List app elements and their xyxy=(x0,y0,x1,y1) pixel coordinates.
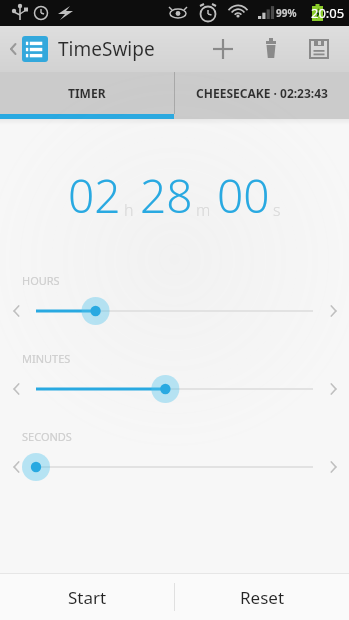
staticText: Start xyxy=(68,586,107,609)
staticText: TimeSwipe xyxy=(58,36,155,62)
button[interactable]: TIMER xyxy=(0,72,174,114)
staticText: Reset xyxy=(240,586,285,609)
staticText: m xyxy=(196,199,211,221)
button[interactable]: Add xyxy=(199,26,247,72)
button[interactable] xyxy=(32,288,317,334)
staticText: 02 xyxy=(68,164,121,227)
staticText: CHEESECAKE · 02:23:43 xyxy=(196,85,328,101)
button[interactable]: Increase SECONDS xyxy=(317,444,349,490)
staticText: s xyxy=(273,199,281,221)
other: Navigate up xyxy=(8,39,18,59)
button[interactable]: Increase HOURS xyxy=(317,288,349,334)
button[interactable]: Reset xyxy=(175,574,349,620)
staticText: 00 xyxy=(217,164,270,227)
staticText: 20:05 xyxy=(311,4,345,22)
button[interactable] xyxy=(32,444,317,490)
staticText: TIMER xyxy=(68,85,106,101)
button[interactable]: Start xyxy=(0,574,174,620)
button[interactable]: Increase MINUTES xyxy=(317,366,349,412)
staticText: 28 xyxy=(140,164,193,227)
button[interactable]: Decrease HOURS xyxy=(0,288,32,334)
staticText: HOURS xyxy=(22,273,60,288)
button[interactable] xyxy=(32,366,317,412)
staticText: h xyxy=(124,199,134,221)
staticText: MINUTES xyxy=(22,351,71,366)
button[interactable]: Decrease MINUTES xyxy=(0,366,32,412)
button[interactable]: Save xyxy=(295,26,343,72)
button[interactable]: Decrease SECONDS xyxy=(0,444,32,490)
staticText: SECONDS xyxy=(22,429,72,444)
button[interactable]: Delete xyxy=(247,26,295,72)
staticText: 99% xyxy=(276,6,297,20)
button[interactable]: Navigate up xyxy=(4,36,159,62)
button[interactable]: CHEESECAKE · 02:23:43 xyxy=(175,72,349,114)
